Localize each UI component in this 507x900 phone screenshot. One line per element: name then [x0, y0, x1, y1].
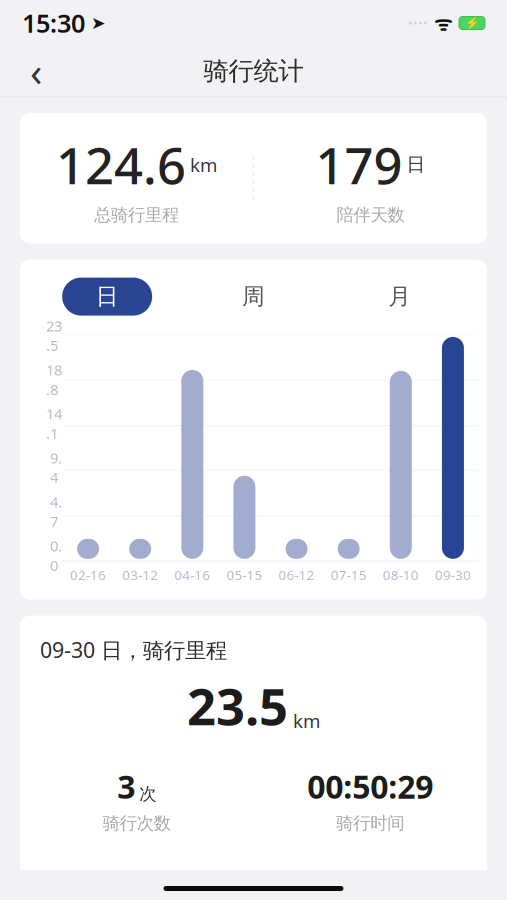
button[interactable]: 月: [355, 278, 445, 316]
staticText: 02-16: [70, 566, 106, 584]
button[interactable]: 周: [208, 278, 298, 316]
staticText: 周: [242, 283, 265, 310]
staticText: 骑行统计: [203, 55, 303, 86]
staticText: 3: [117, 765, 135, 808]
staticText: 07-15: [331, 566, 367, 584]
staticText: 23.5: [187, 672, 288, 739]
staticText: 9.4: [50, 448, 62, 487]
staticText: ⚡: [464, 16, 479, 30]
staticText: 37.9: [316, 862, 379, 900]
staticText: 00:50:29: [307, 765, 433, 808]
staticText: 0.0: [50, 536, 62, 575]
staticText: 124.6: [56, 131, 186, 198]
staticText: 09-30: [435, 566, 471, 584]
staticText: 03-12: [122, 566, 158, 584]
staticText: 日: [96, 283, 119, 310]
staticText: 陪伴天数: [336, 204, 404, 226]
button[interactable]: 日: [62, 278, 152, 316]
staticText: 06-12: [279, 566, 315, 584]
staticText: 09-30 日，骑行里程: [40, 636, 227, 664]
staticText: 总骑行里程: [94, 204, 179, 226]
staticText: 骑行时间: [336, 813, 404, 834]
staticText: ᯤ: [434, 10, 452, 36]
staticText: km: [190, 152, 217, 177]
button[interactable]: Back: [14, 49, 58, 93]
staticText: ‹: [30, 44, 42, 97]
staticText: 14.1: [46, 404, 62, 443]
staticText: 15:30: [22, 6, 85, 40]
staticText: 日: [406, 153, 425, 176]
staticText: 27.9: [82, 862, 145, 900]
staticText: 4.7: [50, 492, 62, 531]
staticText: 骑行次数: [103, 813, 171, 834]
staticText: ➤: [91, 13, 106, 33]
staticText: 08-10: [383, 566, 419, 584]
staticText: 04-16: [174, 566, 210, 584]
staticText: 次: [139, 783, 156, 805]
staticText: 23.5: [46, 316, 62, 355]
staticText: 05-15: [226, 566, 262, 584]
staticText: 月: [388, 283, 411, 310]
staticText: 179: [315, 131, 402, 198]
staticText: km: [293, 708, 320, 733]
staticText: km/h: [149, 878, 191, 900]
staticText: 18.8: [46, 360, 62, 399]
